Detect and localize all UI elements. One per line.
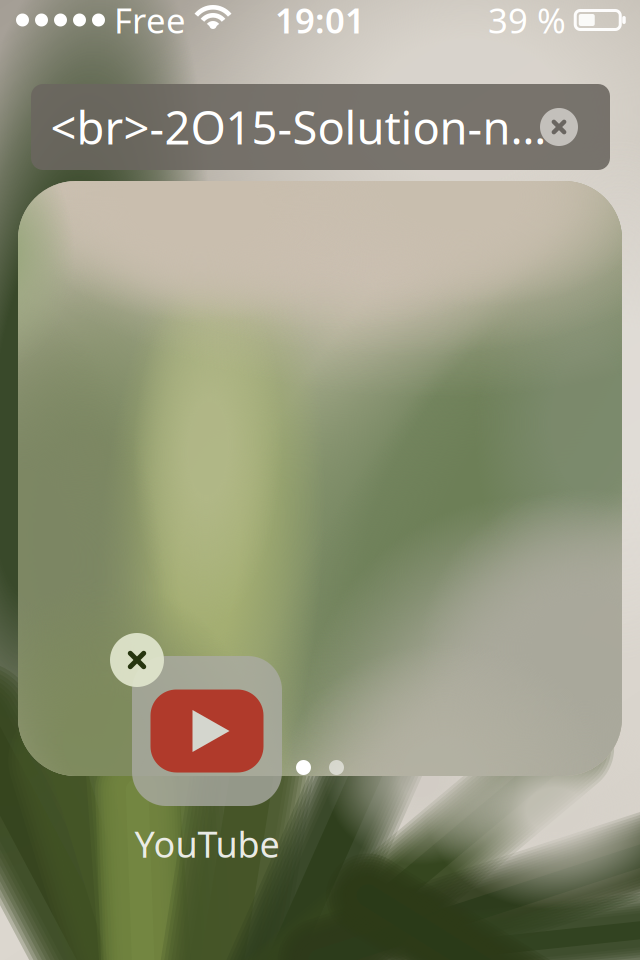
button[interactable]: <br>-2O15-Solution-n…: [31, 84, 610, 170]
button[interactable]: Delete YouTube: [110, 633, 164, 687]
button[interactable]: YouTube: [132, 656, 282, 868]
staticText: Free: [114, 0, 186, 43]
staticText: <br>-2O15-Solution-n…: [50, 97, 546, 157]
staticText: 19:01: [275, 0, 365, 43]
staticText: 39 %: [488, 0, 566, 43]
staticText: YouTube: [134, 820, 279, 868]
